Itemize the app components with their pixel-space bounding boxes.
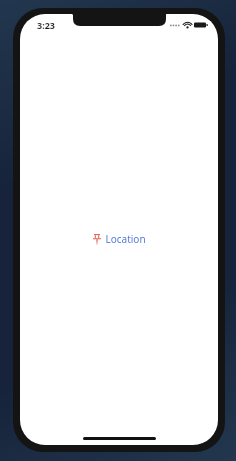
other: Location pin [93, 234, 101, 245]
staticText: 3:23 [37, 19, 55, 31]
staticText: Location [105, 232, 146, 246]
button[interactable]: Location pin [90, 230, 149, 248]
